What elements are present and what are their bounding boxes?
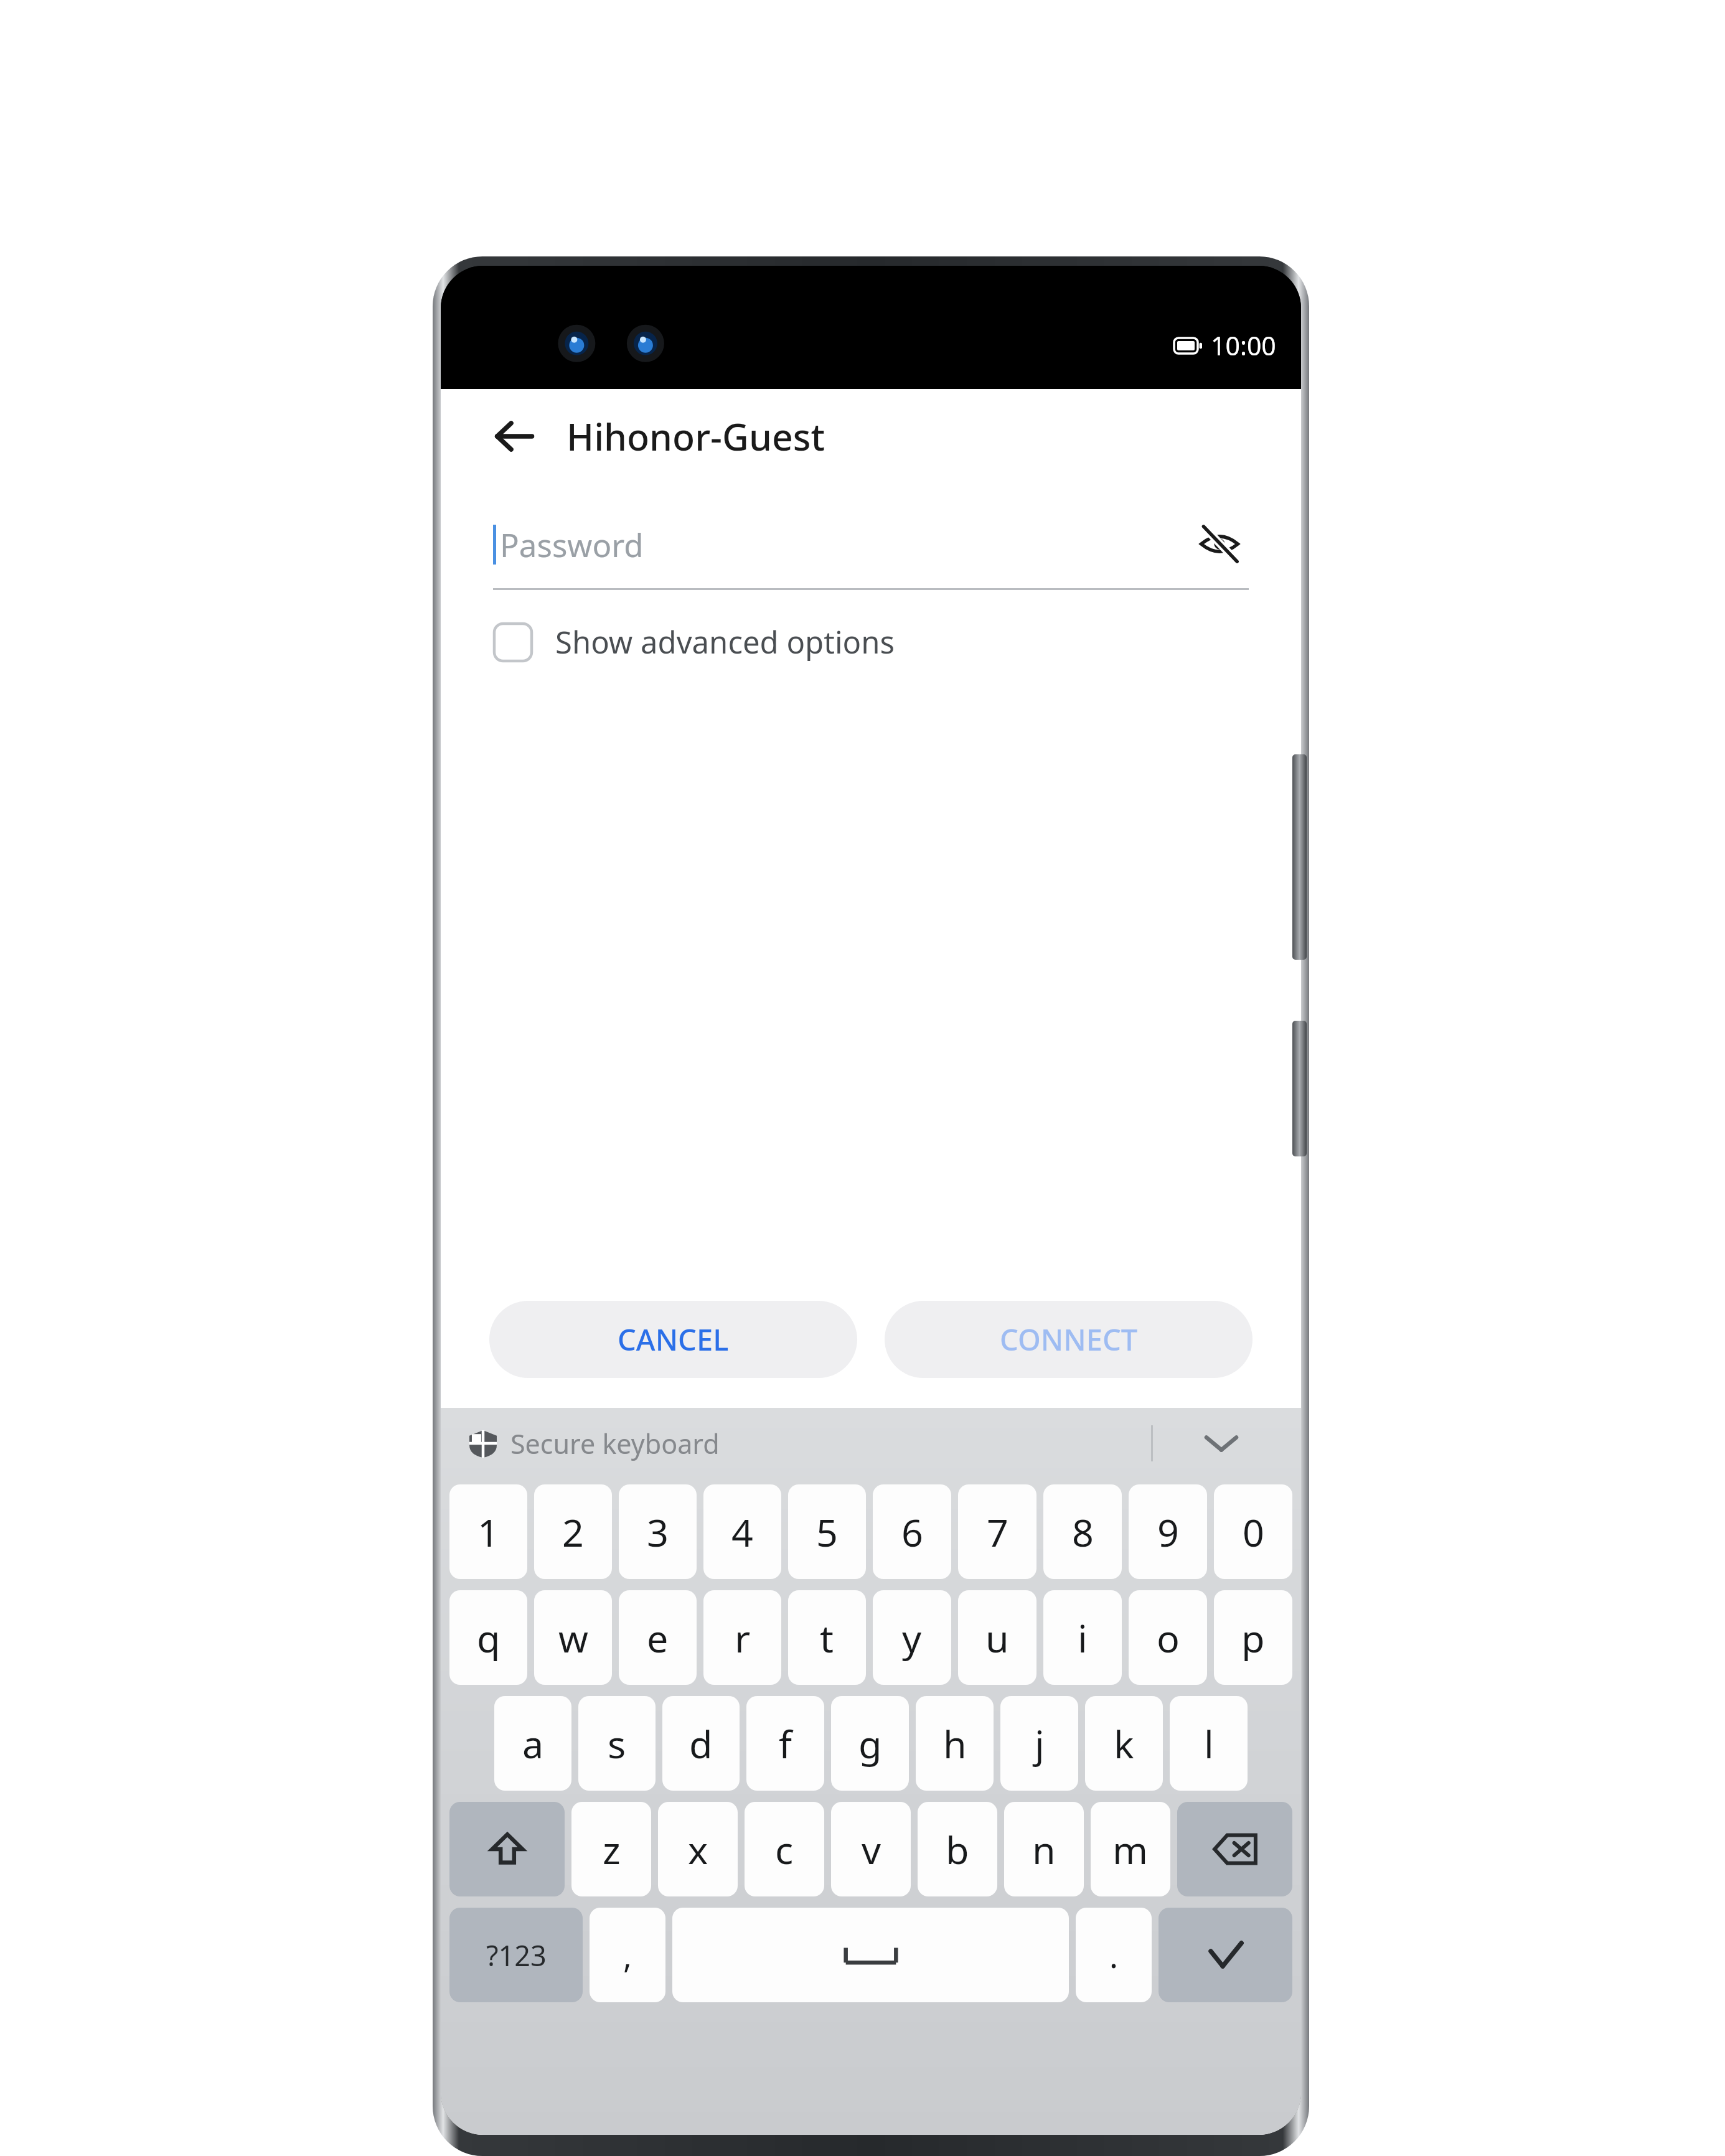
button[interactable]: Backspace xyxy=(1177,1802,1292,1896)
button[interactable]: g xyxy=(831,1696,909,1791)
button[interactable]: 9 xyxy=(1129,1484,1207,1579)
button[interactable]: . xyxy=(1076,1908,1152,2002)
button[interactable]: l xyxy=(1170,1696,1248,1791)
staticText: q xyxy=(477,1612,501,1664)
staticText: m xyxy=(1112,1824,1149,1875)
staticText: CANCEL xyxy=(618,1319,729,1359)
staticText: b xyxy=(946,1824,969,1875)
button[interactable]: v xyxy=(831,1802,911,1896)
staticText: o xyxy=(1157,1612,1180,1664)
staticText: e xyxy=(647,1612,669,1664)
button[interactable]: o xyxy=(1129,1590,1207,1685)
staticText: d xyxy=(689,1718,713,1769)
button[interactable]: 0 xyxy=(1214,1484,1292,1579)
staticText: n xyxy=(1032,1824,1056,1875)
button[interactable]: 7 xyxy=(958,1484,1036,1579)
button[interactable]: 5 xyxy=(788,1484,866,1579)
button[interactable]: 1 xyxy=(449,1484,527,1579)
button[interactable]: x xyxy=(658,1802,738,1896)
button[interactable]: 6 xyxy=(873,1484,951,1579)
staticText: g xyxy=(858,1718,882,1769)
button[interactable]: q xyxy=(449,1590,527,1685)
button[interactable]: d xyxy=(662,1696,740,1791)
staticText: Hihonor-Guest xyxy=(566,411,825,461)
button[interactable]: m xyxy=(1091,1802,1170,1896)
staticText: i xyxy=(1078,1612,1088,1664)
staticText: w xyxy=(558,1612,588,1664)
staticText: 8 xyxy=(1072,1506,1094,1558)
button[interactable]: Show advanced options xyxy=(491,617,898,667)
button[interactable]: k xyxy=(1085,1696,1163,1791)
staticText: 6 xyxy=(901,1506,923,1558)
button[interactable]: Shift xyxy=(449,1802,565,1896)
staticText: Secure keyboard xyxy=(510,1425,720,1462)
staticText: t xyxy=(820,1612,834,1664)
staticText: r xyxy=(735,1612,751,1664)
button[interactable]: Space xyxy=(672,1908,1069,2002)
button[interactable]: z xyxy=(571,1802,651,1896)
staticText: Password xyxy=(500,523,644,566)
button[interactable]: a xyxy=(494,1696,571,1791)
button[interactable]: CANCEL xyxy=(489,1301,857,1378)
button[interactable]: y xyxy=(873,1590,951,1685)
button[interactable]: b xyxy=(918,1802,997,1896)
button[interactable]: Show password xyxy=(1190,515,1249,573)
button[interactable]: 4 xyxy=(703,1484,781,1579)
button[interactable]: , xyxy=(590,1908,665,2002)
staticText: , xyxy=(623,1933,632,1977)
button[interactable]: t xyxy=(788,1590,866,1685)
button[interactable]: Hide keyboard xyxy=(1195,1417,1248,1469)
staticText: 4 xyxy=(731,1506,753,1558)
staticText: h xyxy=(943,1718,967,1769)
button[interactable]: r xyxy=(703,1590,781,1685)
staticText: 3 xyxy=(647,1506,669,1558)
staticText: u xyxy=(985,1612,1009,1664)
staticText: CONNECT xyxy=(1000,1319,1138,1359)
staticText: 0 xyxy=(1243,1506,1264,1558)
button[interactable]: 8 xyxy=(1043,1484,1122,1579)
button[interactable]: i xyxy=(1043,1590,1122,1685)
button[interactable]: e xyxy=(619,1590,697,1685)
button[interactable]: c xyxy=(745,1802,824,1896)
button[interactable]: ?123 xyxy=(449,1908,583,2002)
staticText: a xyxy=(522,1718,544,1769)
button[interactable]: Enter xyxy=(1159,1908,1292,2002)
staticText: Show advanced options xyxy=(555,621,895,663)
button[interactable]: CONNECT xyxy=(885,1301,1253,1378)
staticText: 9 xyxy=(1157,1506,1179,1558)
button[interactable]: j xyxy=(1000,1696,1078,1791)
staticText: 2 xyxy=(562,1506,584,1558)
staticText: 10:00 xyxy=(1211,328,1276,363)
staticText: c xyxy=(775,1824,794,1875)
button[interactable]: Back xyxy=(483,405,545,467)
staticText: y xyxy=(902,1612,922,1664)
staticText: s xyxy=(608,1718,626,1769)
staticText: ?123 xyxy=(486,1936,547,1974)
staticText: f xyxy=(779,1718,792,1769)
staticText: 1 xyxy=(477,1506,499,1558)
button[interactable]: s xyxy=(578,1696,656,1791)
button[interactable]: 2 xyxy=(534,1484,612,1579)
button[interactable]: 3 xyxy=(619,1484,697,1579)
staticText: l xyxy=(1204,1718,1214,1769)
staticText: k xyxy=(1114,1718,1134,1769)
button[interactable]: u xyxy=(958,1590,1036,1685)
button[interactable]: n xyxy=(1004,1802,1084,1896)
staticText: z xyxy=(603,1824,621,1875)
button[interactable]: f xyxy=(746,1696,824,1791)
button[interactable]: p xyxy=(1214,1590,1292,1685)
staticText: 5 xyxy=(816,1506,838,1558)
staticText: 7 xyxy=(987,1506,1008,1558)
staticText: p xyxy=(1241,1612,1265,1664)
staticText: v xyxy=(862,1824,881,1875)
staticText: . xyxy=(1109,1933,1118,1977)
button[interactable]: w xyxy=(534,1590,612,1685)
button[interactable]: h xyxy=(916,1696,994,1791)
staticText: x xyxy=(688,1824,708,1875)
staticText: j xyxy=(1035,1718,1045,1769)
